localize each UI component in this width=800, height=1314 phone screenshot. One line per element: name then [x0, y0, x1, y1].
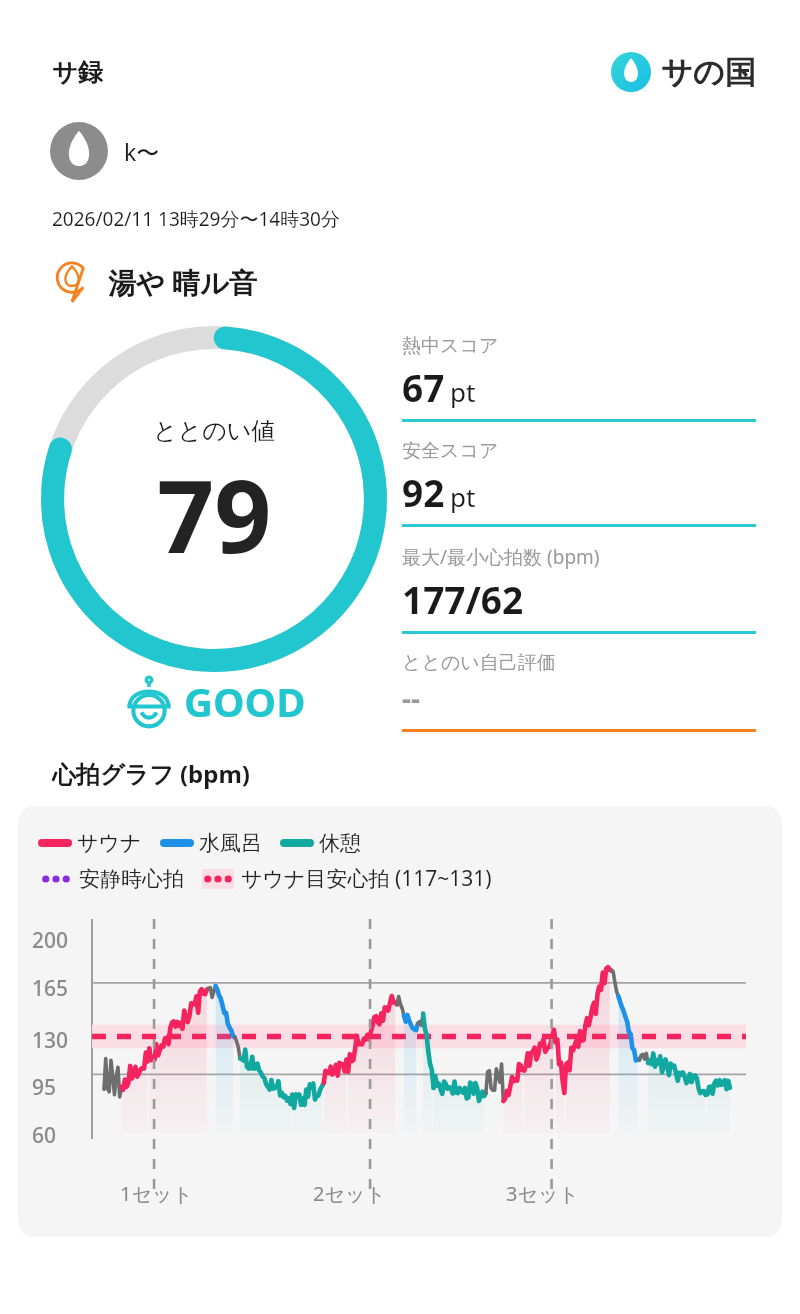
button[interactable]: k〜	[50, 122, 160, 180]
staticText: 79	[157, 446, 272, 582]
staticText: 熱中スコア	[402, 334, 499, 358]
staticText: 2セット	[313, 1180, 386, 1207]
staticText: pt	[450, 479, 476, 514]
staticText: ととのい値	[153, 416, 276, 446]
button[interactable]: サの国 ロゴ	[611, 52, 756, 92]
staticText: 95	[32, 1073, 57, 1102]
staticText: 130	[32, 1026, 69, 1055]
staticText: 心拍グラフ (bpm)	[52, 757, 250, 790]
staticText: 200	[32, 926, 69, 955]
staticText: 安全スコア	[402, 439, 499, 463]
button[interactable]: 最大/最小心拍数 (bpm)	[402, 544, 756, 651]
staticText: 湯や 晴ル音	[108, 263, 257, 301]
button[interactable]: GOOD	[122, 674, 306, 728]
staticText: 60	[32, 1121, 57, 1150]
staticText: pt	[450, 374, 476, 409]
staticText: 92	[402, 467, 445, 517]
staticText: サ録	[52, 57, 103, 88]
staticText: ととのい自己評価	[402, 651, 556, 675]
staticText: 最大/最小心拍数 (bpm)	[402, 544, 600, 570]
staticText: GOOD	[184, 674, 306, 728]
staticText: 休憩	[319, 830, 361, 856]
button[interactable]: 湯や 晴ル音	[50, 260, 257, 304]
staticText: サウナ目安心拍 (117~131)	[241, 864, 492, 893]
staticText: 水風呂	[199, 830, 262, 856]
button[interactable]: ととのい自己評価	[402, 651, 756, 749]
staticText: 165	[32, 974, 69, 1003]
button[interactable]: サウナ	[18, 806, 782, 1237]
staticText: 安静時心拍	[79, 866, 184, 892]
button[interactable]: 安全スコア	[402, 439, 756, 544]
staticText: サウナ	[77, 830, 142, 856]
button[interactable]: 熱中スコア	[402, 334, 756, 439]
staticText: --	[402, 679, 420, 717]
staticText: 177/62	[402, 574, 524, 624]
staticText: 1セット	[120, 1180, 193, 1207]
staticText: k〜	[124, 136, 160, 167]
staticText: サの国	[661, 53, 756, 92]
staticText: 2026/02/11 13時29分〜14時30分	[52, 206, 340, 232]
staticText: 67	[402, 362, 445, 412]
staticText: 3セット	[506, 1180, 579, 1207]
